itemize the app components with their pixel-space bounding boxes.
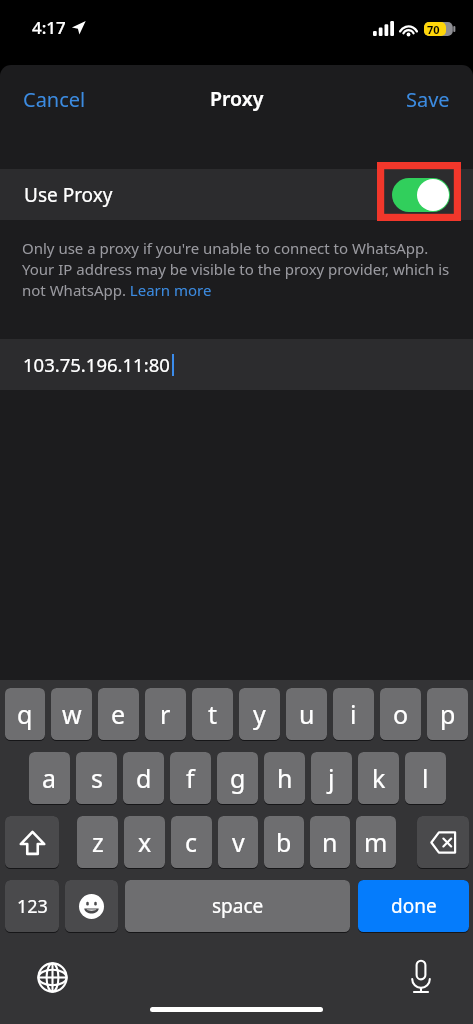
button[interactable]: d [123, 752, 164, 805]
button[interactable]: w [51, 688, 92, 741]
button[interactable]: t [192, 688, 233, 741]
staticText: o [393, 697, 409, 731]
button[interactable]: Dictation [401, 957, 441, 997]
button[interactable]: Shift [5, 816, 59, 869]
staticText: f [186, 761, 195, 795]
staticText: 123 [17, 894, 48, 919]
button[interactable]: z [77, 816, 118, 869]
button[interactable]: u [286, 688, 327, 741]
button[interactable]: f [170, 752, 211, 805]
staticText: g [230, 761, 246, 795]
staticText: m [364, 825, 388, 859]
button[interactable]: 123 [5, 880, 59, 933]
staticText: x [138, 825, 152, 859]
button[interactable]: Save [383, 80, 473, 121]
button[interactable]: b [264, 816, 304, 869]
button[interactable]: g [217, 752, 258, 805]
staticText: l [422, 761, 429, 795]
staticText: v [232, 825, 245, 859]
button[interactable]: Use Proxy toggle, on [392, 178, 450, 212]
button[interactable]: j [311, 752, 352, 805]
button[interactable]: 103.75.196.11:80 [0, 339, 473, 390]
button[interactable]: l [405, 752, 446, 805]
button[interactable]: x [124, 816, 165, 869]
button[interactable]: q [5, 688, 45, 741]
button[interactable]: Emoji keyboard [65, 880, 118, 933]
button[interactable]: Cancel [0, 80, 109, 121]
button[interactable]: k [358, 752, 399, 805]
button[interactable]: Next keyboard [32, 957, 72, 997]
button[interactable]: m [356, 816, 396, 869]
staticText: 70 [427, 22, 440, 36]
staticText: y [253, 697, 266, 731]
button[interactable]: c [171, 816, 212, 869]
staticText: t [208, 697, 218, 731]
staticText: Use Proxy [24, 182, 113, 208]
staticText: Proxy [210, 85, 264, 112]
button[interactable]: y [239, 688, 280, 741]
staticText: done [391, 893, 437, 919]
staticText: z [92, 825, 104, 859]
button[interactable]: v [218, 816, 258, 869]
button[interactable]: a [29, 752, 70, 805]
button[interactable]: space [125, 880, 350, 933]
staticText: i [350, 697, 357, 731]
staticText: e [111, 697, 126, 731]
staticText: r [160, 697, 171, 731]
staticText: space [212, 893, 264, 919]
staticText: 103.75.196.11:80 [23, 352, 170, 377]
button[interactable]: s [76, 752, 117, 805]
staticText: q [17, 697, 33, 731]
button[interactable]: n [310, 816, 350, 869]
staticText: Only use a proxy if you're unable to con… [22, 238, 450, 301]
button[interactable]: p [427, 688, 468, 741]
staticText: k [372, 761, 386, 795]
staticText: a [42, 761, 57, 795]
button[interactable]: Backspace [417, 816, 469, 869]
staticText: p [440, 697, 456, 731]
button[interactable]: r [145, 688, 186, 741]
button[interactable]: i [333, 688, 374, 741]
button[interactable]: done [358, 880, 469, 933]
staticText: j [328, 761, 335, 795]
staticText: h [277, 761, 293, 795]
staticText: c [185, 825, 198, 859]
button[interactable]: h [264, 752, 305, 805]
staticText: u [299, 697, 315, 731]
staticText: 4:17 [32, 16, 66, 39]
staticText: Save [406, 86, 450, 113]
staticText: d [136, 761, 152, 795]
button[interactable]: o [380, 688, 421, 741]
staticText: b [276, 825, 292, 859]
staticText: n [322, 825, 338, 859]
staticText: s [91, 761, 103, 795]
button[interactable]: Use Proxy [0, 169, 473, 220]
staticText: Cancel [23, 86, 86, 113]
staticText: w [62, 697, 82, 731]
button[interactable]: e [98, 688, 139, 741]
